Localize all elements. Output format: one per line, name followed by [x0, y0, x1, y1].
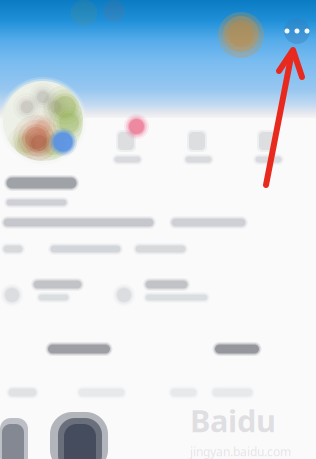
button[interactable]: Message	[158, 334, 316, 364]
button[interactable]: Follow	[0, 334, 158, 364]
button[interactable]: Profile detail	[113, 276, 217, 308]
button[interactable]: Shortcut	[175, 124, 219, 166]
button[interactable]: Notifications	[104, 124, 148, 166]
button[interactable]: Profile detail	[1, 276, 105, 308]
button[interactable]: Shortcut	[245, 124, 289, 166]
button[interactable]: Profile photo	[0, 77, 87, 165]
staticText: Baidu	[190, 400, 276, 441]
staticText: jingyan.baidu.com	[190, 444, 291, 459]
button[interactable]: More options	[284, 18, 310, 44]
